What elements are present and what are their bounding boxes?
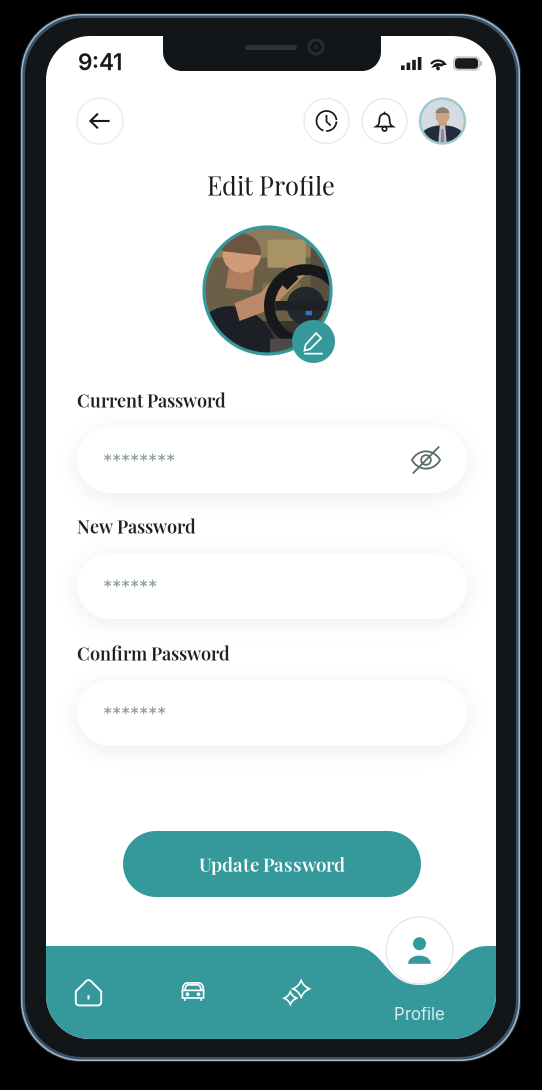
staticText: Profile — [394, 1004, 445, 1024]
button[interactable]: Services — [269, 965, 325, 1021]
staticText: 9:41 — [78, 48, 122, 76]
staticText: New Password — [77, 514, 196, 538]
staticText: Update Password — [199, 852, 345, 876]
staticText: Edit Profile — [207, 168, 335, 202]
staticText: ****** — [103, 575, 157, 597]
staticText: Confirm Password — [77, 641, 230, 665]
staticText: ******* — [103, 702, 166, 724]
button[interactable]: Profile — [364, 917, 474, 1032]
button[interactable]: Back — [77, 98, 123, 144]
button[interactable]: Account — [420, 98, 465, 143]
button[interactable]: Update Password — [123, 831, 421, 897]
button[interactable]: Home — [60, 965, 116, 1021]
staticText: Current Password — [77, 388, 226, 412]
button[interactable]: Vehicles — [165, 963, 221, 1019]
staticText: ******** — [103, 449, 175, 471]
button[interactable]: History — [304, 98, 349, 143]
button[interactable]: Notifications — [362, 98, 407, 143]
